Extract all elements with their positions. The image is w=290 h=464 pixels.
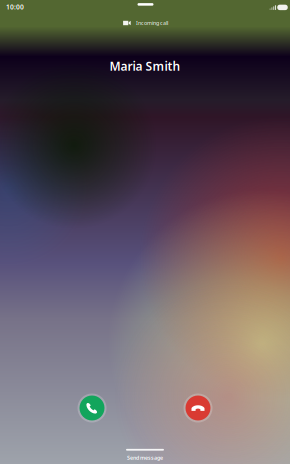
staticText: Incoming call: [136, 19, 168, 27]
button[interactable]: Accept call: [75, 391, 109, 425]
button[interactable]: Decline call: [181, 391, 215, 425]
staticText: Maria Smith: [109, 58, 180, 74]
staticText: Send message: [127, 454, 163, 461]
button[interactable]: Send message: [85, 445, 205, 464]
staticText: 10:00: [6, 3, 24, 11]
